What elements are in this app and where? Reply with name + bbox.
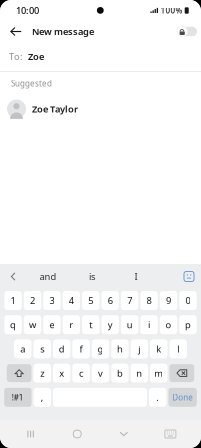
staticText: . xyxy=(156,391,159,403)
button[interactable]: g xyxy=(92,339,109,358)
staticText: is xyxy=(89,270,95,283)
staticText: 6 xyxy=(108,294,113,307)
staticText: c xyxy=(79,367,83,379)
button[interactable]: l xyxy=(169,339,187,358)
button[interactable]: Back xyxy=(3,21,29,42)
staticText: k xyxy=(156,343,161,355)
staticText: 5 xyxy=(88,294,93,307)
staticText: 1 xyxy=(11,294,16,307)
staticText: New message xyxy=(32,25,94,38)
button[interactable]: n xyxy=(131,364,148,383)
button[interactable]: k xyxy=(150,339,167,358)
button[interactable]: 6 xyxy=(101,291,119,310)
staticText: d xyxy=(59,343,65,355)
button[interactable]: 7 xyxy=(121,291,138,310)
button[interactable]: c xyxy=(72,364,90,383)
button[interactable]: 2 xyxy=(24,291,41,310)
button[interactable]: i xyxy=(140,315,158,334)
staticText: v xyxy=(98,367,103,379)
button[interactable]: Hide keyboard xyxy=(108,423,140,445)
button[interactable]: Shift xyxy=(7,364,31,382)
button[interactable]: . xyxy=(149,388,166,407)
staticText: p xyxy=(185,318,191,331)
button[interactable]: y xyxy=(101,315,119,334)
button[interactable]: o xyxy=(160,315,177,334)
staticText: 3 xyxy=(49,294,54,307)
staticText: and xyxy=(39,270,56,283)
staticText: e xyxy=(49,318,54,331)
button[interactable]: 9 xyxy=(160,291,177,310)
button[interactable]: Backspace xyxy=(169,364,194,382)
button[interactable]: x xyxy=(53,364,70,383)
button[interactable]: r xyxy=(63,315,80,334)
button[interactable]: u xyxy=(121,315,138,334)
button[interactable]: !#1 xyxy=(4,388,32,407)
staticText: y xyxy=(108,318,113,331)
button[interactable]: Recents xyxy=(15,423,47,445)
button[interactable]: 5 xyxy=(82,291,99,310)
staticText: Suggested xyxy=(11,78,52,89)
button[interactable]: q xyxy=(4,315,22,334)
button[interactable]: v xyxy=(92,364,109,383)
staticText: s xyxy=(40,343,44,355)
button[interactable]: a xyxy=(14,339,31,358)
button[interactable]: Stickers xyxy=(177,264,201,289)
button[interactable]: Change keyboard xyxy=(154,423,186,445)
staticText: r xyxy=(69,318,73,331)
staticText: 8 xyxy=(147,294,152,307)
staticText: b xyxy=(117,367,123,379)
button[interactable]: is xyxy=(70,264,114,289)
staticText: , xyxy=(41,391,44,403)
staticText: 2 xyxy=(30,294,35,307)
button[interactable]: j xyxy=(131,339,148,358)
button[interactable]: p xyxy=(179,315,197,334)
staticText: n xyxy=(136,367,142,379)
staticText: q xyxy=(10,318,16,331)
staticText: z xyxy=(40,367,44,379)
button[interactable]: Zoe Taylor xyxy=(0,95,201,123)
button[interactable]: Previous suggestions xyxy=(0,264,26,289)
button[interactable]: and xyxy=(26,264,70,289)
staticText: w xyxy=(29,318,36,331)
button[interactable]: 3 xyxy=(43,291,61,310)
button[interactable]: Home xyxy=(61,423,93,445)
button[interactable]: f xyxy=(72,339,90,358)
staticText: 4 xyxy=(69,294,74,307)
button[interactable]: 1 xyxy=(4,291,22,310)
button[interactable]: w xyxy=(24,315,41,334)
staticText: 9 xyxy=(166,294,171,307)
staticText: 10:00 xyxy=(16,4,39,17)
staticText: x xyxy=(59,367,64,379)
button[interactable]: , xyxy=(34,388,51,407)
staticText: f xyxy=(80,343,83,355)
staticText: m xyxy=(154,367,163,379)
staticText: To: xyxy=(9,50,23,63)
staticText: a xyxy=(20,343,25,355)
staticText: 100% xyxy=(160,5,182,16)
staticText: g xyxy=(97,343,103,355)
button[interactable]: 4 xyxy=(63,291,80,310)
button[interactable]: m xyxy=(150,364,167,383)
staticText: Zoe Taylor xyxy=(32,103,78,115)
staticText: i xyxy=(148,318,150,331)
staticText: Done xyxy=(172,392,193,403)
button[interactable]: h xyxy=(111,339,129,358)
staticText: t xyxy=(89,318,92,331)
staticText: l xyxy=(177,343,179,355)
button[interactable]: z xyxy=(33,364,51,383)
button[interactable]: Done xyxy=(168,388,197,407)
staticText: !#1 xyxy=(12,392,24,403)
button[interactable]: e xyxy=(43,315,61,334)
button[interactable]: t xyxy=(82,315,99,334)
button[interactable]: 0 xyxy=(179,291,197,310)
staticText: I xyxy=(134,270,137,283)
button[interactable]: b xyxy=(111,364,129,383)
button[interactable]: I xyxy=(114,264,158,289)
staticText: u xyxy=(127,318,133,331)
staticText: 7 xyxy=(127,294,132,307)
button[interactable]: s xyxy=(33,339,51,358)
button[interactable]: Secure conversation xyxy=(173,21,201,42)
button[interactable]: d xyxy=(53,339,70,358)
button[interactable]: 8 xyxy=(140,291,158,310)
